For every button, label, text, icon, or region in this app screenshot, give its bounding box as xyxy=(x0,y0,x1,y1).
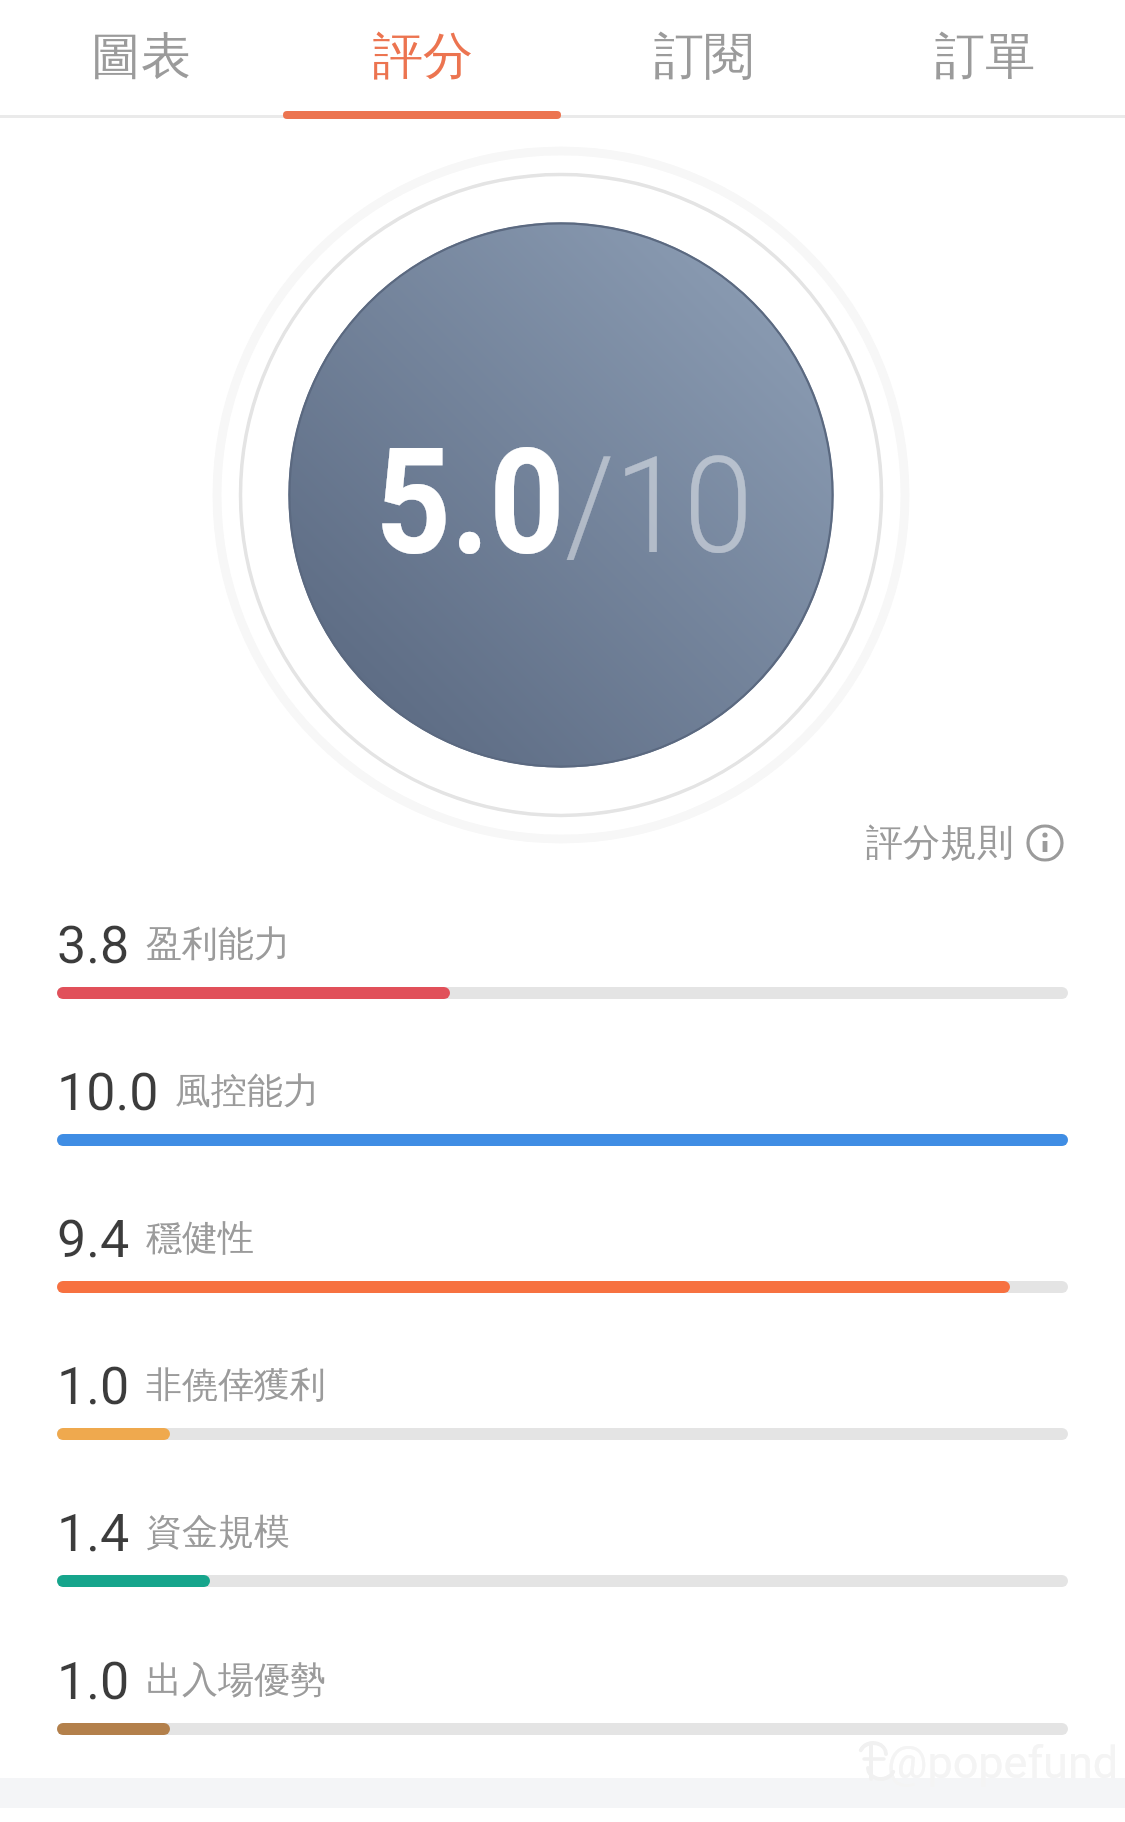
staticText: 1.4 xyxy=(57,1503,130,1564)
button[interactable]: 訂閱 xyxy=(563,0,844,118)
button[interactable]: 9.4 xyxy=(0,1209,1125,1293)
staticText: 9.4 xyxy=(57,1209,130,1270)
staticText: 非僥倖獲利 xyxy=(146,1362,326,1407)
button[interactable]: 1.0 xyxy=(0,1356,1125,1440)
staticText: 5.0 xyxy=(375,418,565,589)
staticText: /10 xyxy=(565,428,753,585)
staticText: 10.0 xyxy=(57,1062,159,1123)
button[interactable]: 圖表 xyxy=(0,0,282,118)
button[interactable]: 評分 xyxy=(282,0,563,118)
staticText: 風控能力 xyxy=(175,1068,319,1113)
button[interactable]: 10.0 xyxy=(0,1062,1125,1146)
staticText: 訂閱 xyxy=(654,25,754,88)
staticText: 1.0 xyxy=(57,1651,130,1712)
button[interactable]: 評分規則 xyxy=(862,813,1068,872)
other: Scoring rules info xyxy=(1026,824,1064,862)
button[interactable]: 1.4 xyxy=(0,1503,1125,1587)
staticText: 1.0 xyxy=(57,1356,130,1417)
button[interactable]: 訂單 xyxy=(844,0,1125,118)
staticText: 圖表 xyxy=(91,25,191,88)
staticText: 評分 xyxy=(373,25,473,88)
staticText: 盈利能力 xyxy=(146,921,290,966)
staticText: 穩健性 xyxy=(146,1215,254,1260)
staticText: 訂單 xyxy=(935,25,1035,88)
staticText: 資金規模 xyxy=(146,1509,290,1554)
staticText: 3.8 xyxy=(57,915,130,976)
staticText: 評分規則 xyxy=(866,819,1014,866)
button[interactable]: 3.8 xyxy=(0,915,1125,999)
staticText: 出入場優勢 xyxy=(146,1657,326,1702)
staticText: @popefund xyxy=(887,1736,1119,1789)
button[interactable]: 1.0 xyxy=(0,1651,1125,1735)
